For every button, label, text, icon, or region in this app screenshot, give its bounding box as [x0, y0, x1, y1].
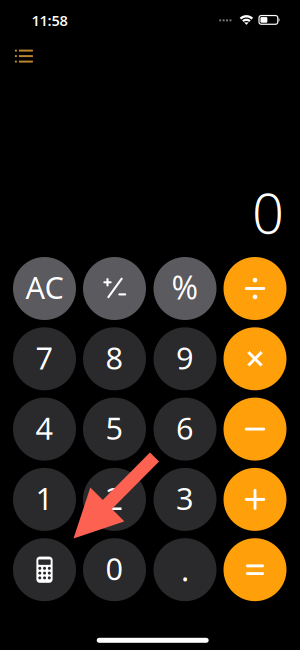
button[interactable]: 4 [13, 398, 76, 461]
staticText: 3 [176, 478, 194, 518]
staticText: 11:58 [31, 11, 67, 30]
button[interactable]: All Clear [13, 257, 76, 320]
button[interactable]: Plus Minus [83, 257, 146, 320]
staticText: 0 [252, 175, 284, 249]
staticText: 4 [35, 407, 53, 448]
button[interactable]: Divide [223, 257, 286, 320]
button[interactable]: History [4, 38, 44, 74]
staticText: 6 [176, 407, 194, 448]
staticText: % [171, 266, 198, 308]
staticText: 5 [105, 407, 123, 448]
button[interactable]: 6 [153, 398, 216, 461]
staticText: . [181, 549, 189, 590]
button[interactable]: Minus [223, 398, 286, 461]
staticText: 2 [105, 478, 123, 518]
staticText: 8 [105, 337, 123, 378]
button[interactable]: 2 [83, 468, 146, 531]
button[interactable]: Calculator [13, 538, 76, 601]
button[interactable]: Multiply [223, 327, 286, 390]
button[interactable]: 3 [153, 468, 216, 531]
button[interactable]: Percent [153, 257, 216, 320]
button[interactable]: 1 [13, 468, 76, 531]
staticText: AC [25, 267, 63, 307]
button[interactable]: 7 [13, 327, 76, 390]
button[interactable]: 8 [83, 327, 146, 390]
button[interactable]: 5 [83, 398, 146, 461]
button[interactable]: 0 [83, 538, 146, 601]
staticText: 7 [35, 337, 53, 378]
button[interactable]: Decimal point [153, 538, 216, 601]
button[interactable]: Plus [223, 468, 286, 531]
staticText: 0 [105, 548, 123, 589]
button[interactable]: 9 [153, 327, 216, 390]
button[interactable]: Equals [223, 538, 286, 601]
staticText: 9 [176, 337, 194, 378]
staticText: 1 [35, 478, 53, 518]
